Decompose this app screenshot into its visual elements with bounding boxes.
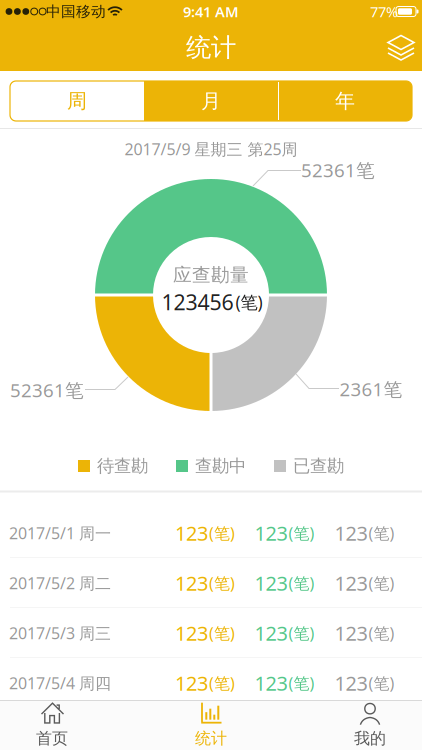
staticText: 52361笔 [301,158,375,182]
button[interactable] [388,35,414,60]
button[interactable]: 2017/5/1 周一 [0,508,422,558]
staticText: 123 [175,620,208,646]
button[interactable]: 我的 [320,700,420,750]
staticText: 2017/5/3 周三 [9,622,111,644]
staticText: 已查勘 [293,455,344,477]
staticText: 2017/5/1 周一 [9,522,111,544]
staticText: (笔) [288,622,314,644]
staticText: 中国移动 [46,2,106,20]
button[interactable]: 2017/5/3 周三 [0,608,422,658]
staticText: 2361笔 [339,377,402,401]
staticText: 9:41 AM [183,2,239,21]
staticText: (笔) [368,572,394,594]
staticText: 统计 [195,729,227,748]
staticText: (笔) [368,522,394,544]
staticText: 待查勘 [97,455,148,477]
staticText: 123 [175,570,208,596]
staticText: 123 [254,570,287,596]
button[interactable]: 年 [278,81,412,121]
staticText: 123 [334,670,367,696]
staticText: 2017/5/4 周四 [9,672,111,694]
staticText: 52361笔 [10,378,84,402]
staticText: 应查勘量 [173,263,249,286]
staticText: 我的 [354,729,386,748]
staticText: (笔) [288,672,314,694]
staticText: 周 [67,89,87,113]
staticText: (笔) [209,622,235,644]
staticText: 首页 [36,729,68,748]
staticText: (笔) [288,522,314,544]
button[interactable]: 统计 [161,700,261,750]
staticText: 123 [254,670,287,696]
staticText: 123 [334,620,367,646]
staticText: 2017/5/2 周二 [9,572,111,594]
staticText: 123 [254,620,287,646]
staticText: 123456 [161,288,233,316]
staticText: 查勘中 [195,455,246,477]
staticText: 123 [175,670,208,696]
staticText: 123 [175,520,208,546]
staticText: 2017/5/9 星期三 第25周 [124,138,297,160]
staticText: (笔) [209,572,235,594]
staticText: 123 [334,520,367,546]
button[interactable]: 月 [144,81,278,121]
button[interactable]: 周 [10,81,144,121]
staticText: 统计 [186,32,236,63]
staticText: (笔) [368,672,394,694]
button[interactable]: 首页 [2,700,102,750]
staticText: (笔) [288,572,314,594]
staticText: (笔) [209,672,235,694]
staticText: (笔) [368,622,394,644]
button[interactable]: 2017/5/4 周四 [0,658,422,708]
staticText: 123 [254,520,287,546]
staticText: 77% [370,2,398,21]
staticText: (笔) [209,522,235,544]
staticText: (笔) [235,290,262,313]
staticText: 年 [335,89,355,113]
staticText: 月 [201,89,221,113]
button[interactable]: 2017/5/2 周二 [0,558,422,608]
staticText: 123 [334,570,367,596]
